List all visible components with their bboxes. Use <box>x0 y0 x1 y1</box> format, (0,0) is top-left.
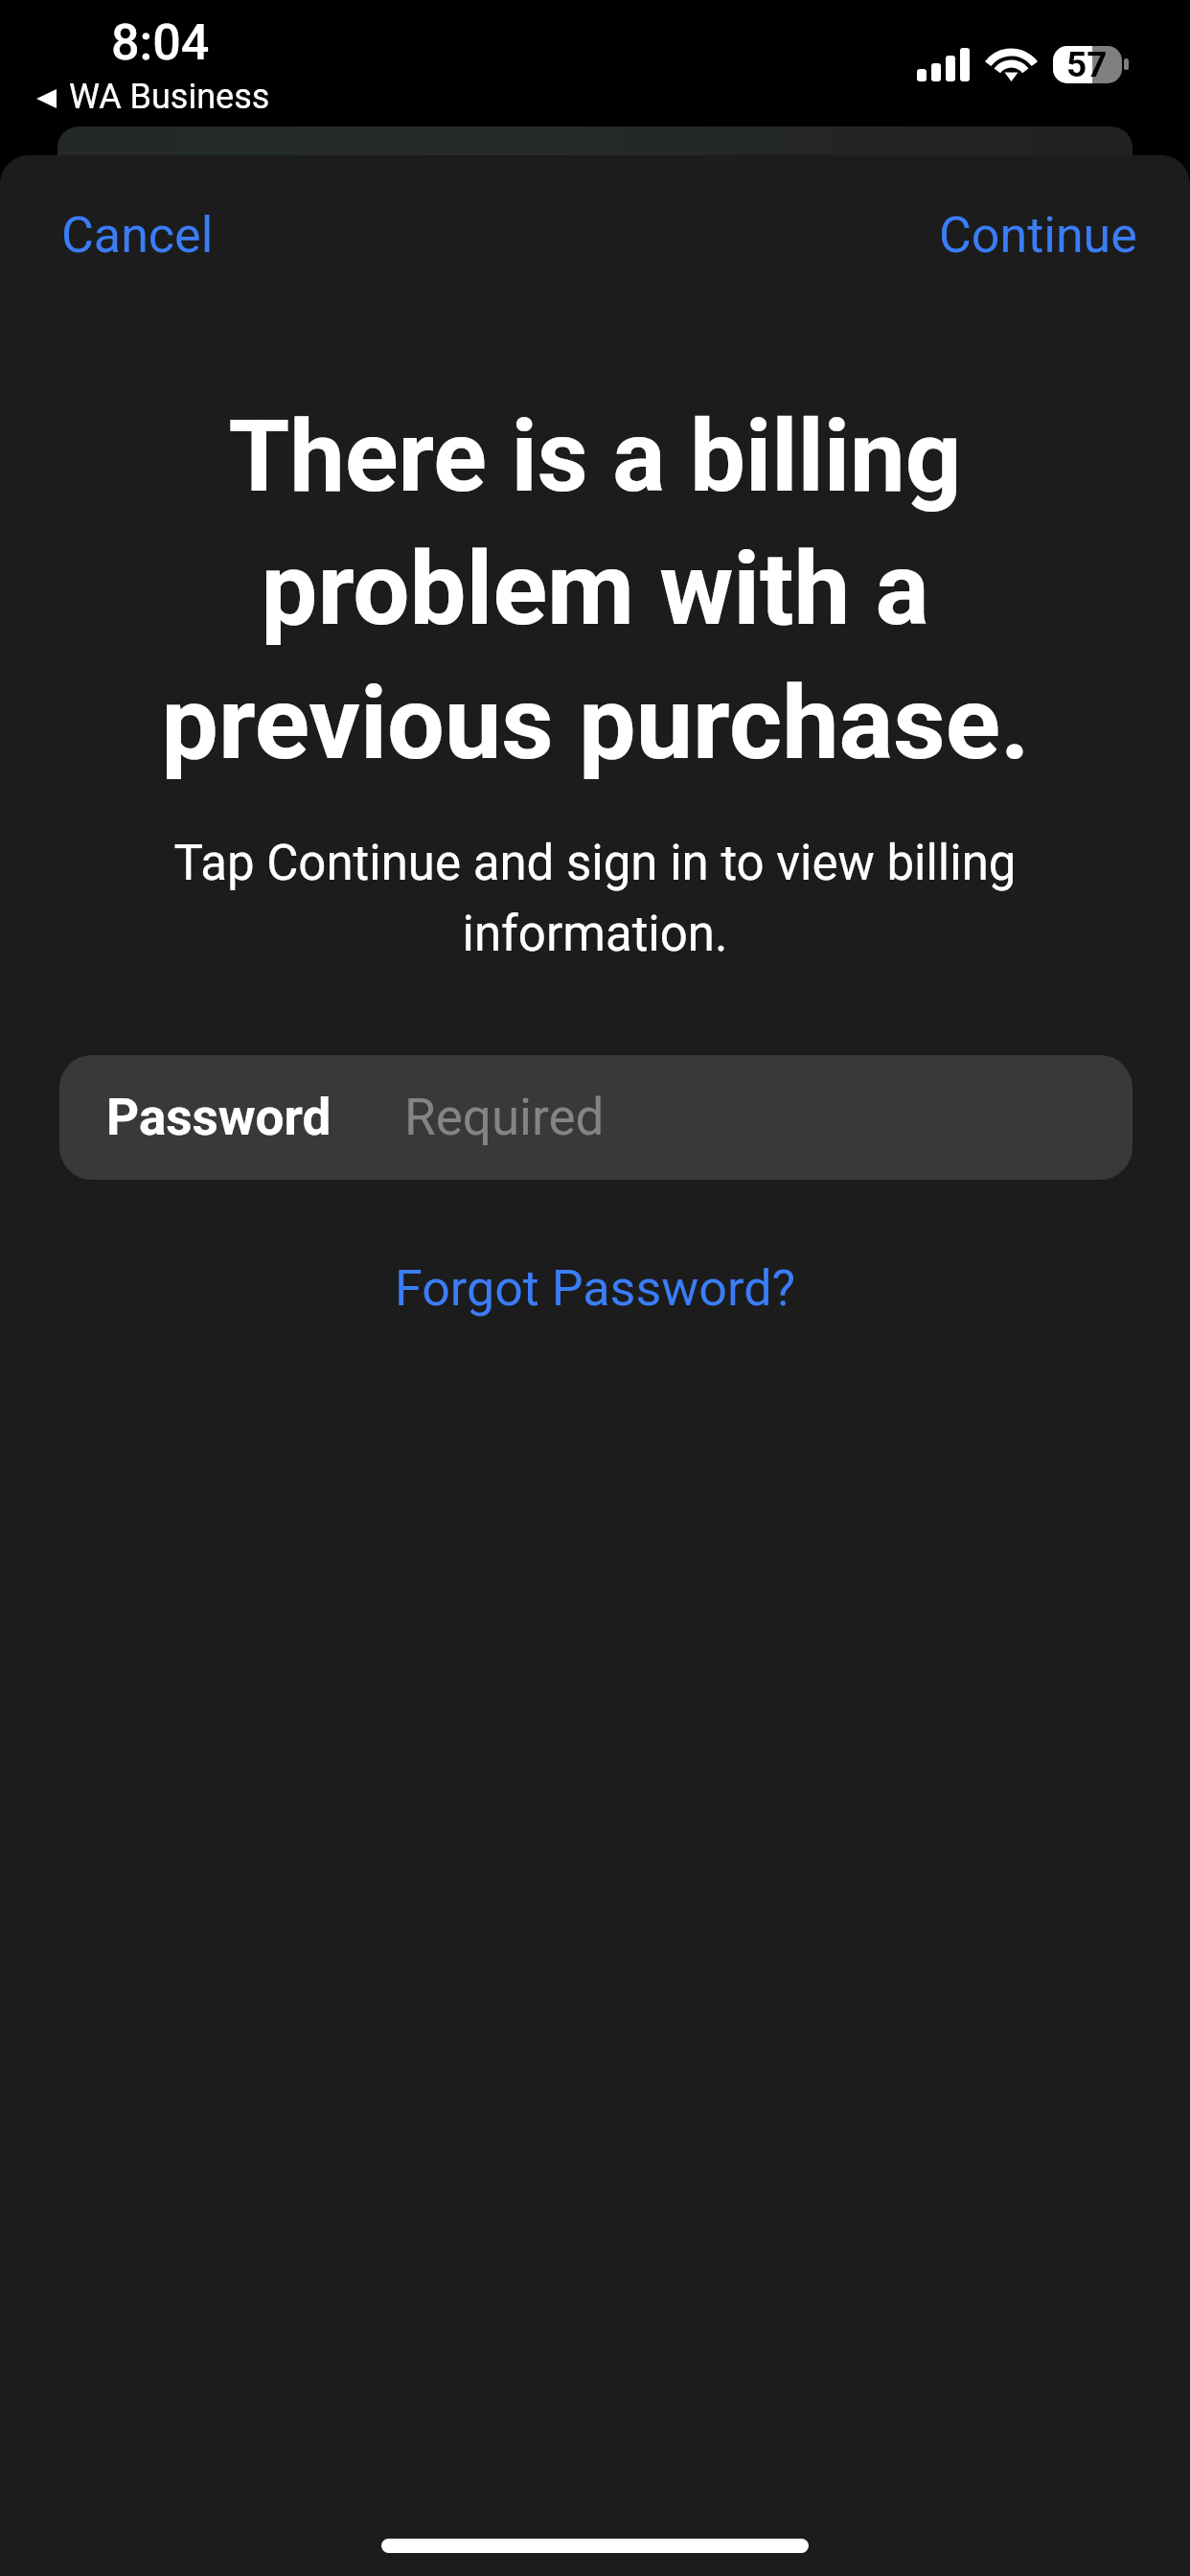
other: Cellular signal <box>917 48 970 81</box>
staticText: Forgot Password? <box>395 1259 796 1318</box>
staticText: WA Business <box>69 77 270 117</box>
button[interactable]: Back to WA Business <box>29 75 274 117</box>
other: Battery 57 percent <box>1053 46 1130 83</box>
staticText: Cancel <box>61 206 214 264</box>
staticText: There is a billing <box>228 399 962 515</box>
button[interactable]: Continue <box>901 187 1176 284</box>
other: Wi-Fi <box>989 47 1034 81</box>
button[interactable]: Password <box>59 1055 1133 1180</box>
staticText: Password <box>106 1088 332 1147</box>
staticText: Continue <box>939 206 1137 264</box>
staticText: problem with a <box>261 531 929 649</box>
button[interactable]: Forgot Password? <box>347 1238 844 1339</box>
staticText: previous purchase. <box>161 664 1030 783</box>
button[interactable]: Cancel <box>23 187 252 284</box>
staticText: 57 <box>1066 44 1108 85</box>
staticText: Required <box>404 1088 605 1147</box>
staticText: 8:04 <box>111 13 210 72</box>
staticText: Tap Continue and sign in to view billing… <box>125 835 1065 962</box>
